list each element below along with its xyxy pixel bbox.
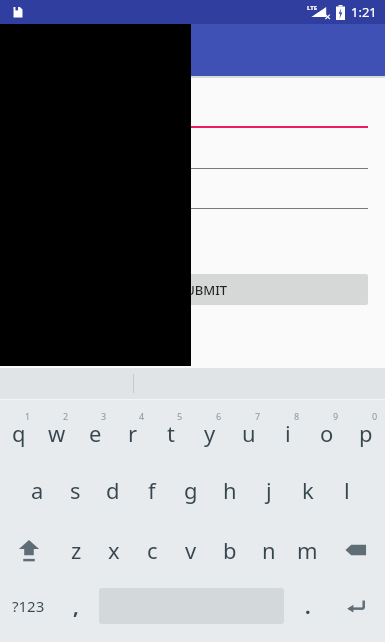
button[interactable]: Shift (0, 520, 57, 580)
button[interactable]: h (210, 460, 249, 520)
button[interactable]: , (57, 580, 95, 632)
staticText: h (223, 475, 237, 505)
button[interactable]: 8 (268, 400, 307, 460)
staticText: y (204, 418, 216, 448)
staticText: SUBMIT (178, 281, 228, 299)
button[interactable]: 2 (38, 400, 76, 460)
button[interactable]: m (288, 520, 327, 580)
staticText: ?123 (12, 596, 45, 616)
button[interactable]: . (288, 580, 327, 632)
staticText: p (359, 418, 373, 448)
button[interactable]: d (94, 460, 132, 520)
staticText: q (12, 418, 26, 448)
staticText: l (344, 475, 350, 505)
staticText: j (266, 475, 272, 505)
staticText: m (297, 535, 318, 565)
button[interactable]: c (133, 520, 171, 580)
button[interactable]: z (57, 520, 95, 580)
button[interactable]: l (327, 460, 366, 520)
staticText: c (147, 535, 158, 565)
button[interactable]: 6 (190, 400, 229, 460)
staticText: b (223, 535, 237, 565)
staticText: u (242, 418, 256, 448)
staticText: 8 (294, 410, 300, 422)
staticText: t (167, 418, 175, 448)
staticText: 1:21 (351, 3, 377, 21)
button[interactable]: s (56, 460, 94, 520)
button[interactable]: 4 (114, 400, 152, 460)
button[interactable]: g (171, 460, 210, 520)
button[interactable]: 0 (346, 400, 385, 460)
button[interactable]: 9 (307, 400, 346, 460)
staticText: o (320, 418, 334, 448)
button[interactable]: x (95, 520, 133, 580)
staticText: , (73, 593, 79, 620)
staticText: a (31, 475, 44, 505)
staticText: 0 (372, 410, 378, 422)
staticText: v (185, 535, 197, 565)
staticText: k (302, 475, 314, 505)
staticText: . (305, 593, 311, 620)
staticText: 5 (177, 410, 183, 422)
staticText: e (89, 418, 102, 448)
staticText: x (108, 535, 120, 565)
button[interactable]: k (288, 460, 327, 520)
staticText: 1 (25, 410, 31, 422)
staticText: s (70, 475, 81, 505)
button[interactable]: ?123 (0, 580, 57, 632)
staticText: d (106, 475, 120, 505)
staticText: g (184, 475, 198, 505)
button[interactable]: Delete (327, 520, 385, 580)
staticText: z (71, 535, 82, 565)
staticText: r (128, 418, 138, 448)
button[interactable]: 3 (76, 400, 114, 460)
button[interactable]: 7 (229, 400, 268, 460)
button[interactable]: f (132, 460, 171, 520)
button[interactable]: 1 (0, 400, 38, 460)
staticText: 2 (63, 410, 69, 422)
button[interactable]: a (18, 460, 56, 520)
staticText: 3 (101, 410, 107, 422)
staticText: n (262, 535, 276, 565)
staticText: 4 (139, 410, 145, 422)
button[interactable]: n (249, 520, 288, 580)
staticText: f (148, 475, 156, 505)
button[interactable]: b (210, 520, 249, 580)
staticText: 6 (216, 410, 222, 422)
staticText: 7 (255, 410, 261, 422)
staticText: 9 (333, 410, 339, 422)
button[interactable]: 5 (152, 400, 190, 460)
staticText: i (285, 418, 291, 448)
button[interactable]: Enter (327, 580, 385, 632)
button[interactable]: SUBMIT (16, 274, 368, 305)
staticText: w (48, 418, 66, 448)
button[interactable]: j (249, 460, 288, 520)
button[interactable]: v (171, 520, 210, 580)
staticText: LTE (307, 4, 318, 12)
